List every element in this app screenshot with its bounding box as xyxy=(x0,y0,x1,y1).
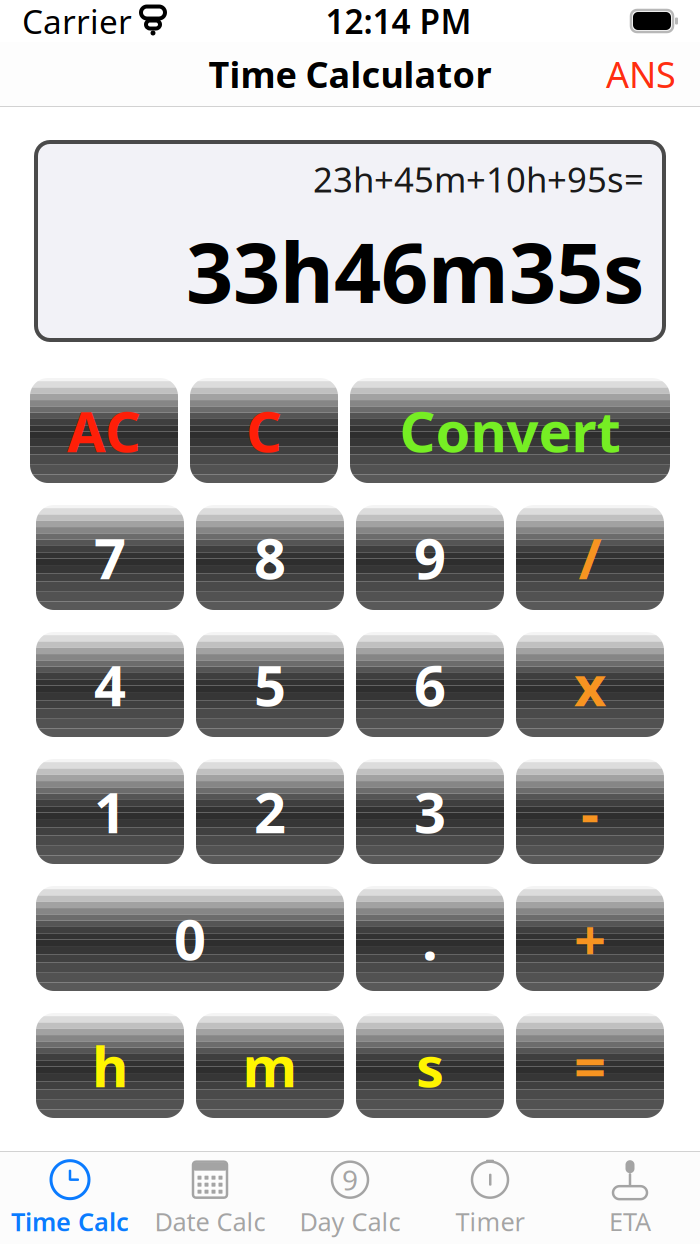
button[interactable]: m xyxy=(196,1013,344,1118)
staticText: 5 xyxy=(254,647,286,722)
staticText: Date Calc xyxy=(154,1205,265,1238)
button[interactable]: 1 xyxy=(36,759,184,864)
staticText: Time Calculator xyxy=(208,50,491,98)
button[interactable]: 4 xyxy=(36,632,184,737)
staticText: - xyxy=(581,774,599,849)
staticText: Convert xyxy=(399,393,620,468)
button[interactable]: x xyxy=(516,632,664,737)
staticText: Carrier xyxy=(22,0,132,43)
staticText: 9 xyxy=(414,520,446,595)
button[interactable]: 2 xyxy=(196,759,344,864)
staticText: 23h+45m+10h+95s= xyxy=(313,156,644,202)
staticText: 6 xyxy=(414,647,446,722)
staticText: 8 xyxy=(254,520,286,595)
button[interactable]: 7 xyxy=(36,505,184,610)
staticText: 1 xyxy=(94,774,126,849)
button[interactable]: s xyxy=(356,1013,504,1118)
staticText: / xyxy=(578,520,601,595)
staticText: 33h46m35s xyxy=(186,216,644,326)
button[interactable]: . xyxy=(356,886,504,991)
button[interactable]: Time Calc xyxy=(0,1156,140,1240)
button[interactable]: 5 xyxy=(196,632,344,737)
button[interactable]: 9 xyxy=(356,505,504,610)
button[interactable]: C xyxy=(190,378,338,483)
staticText: + xyxy=(574,901,606,976)
staticText: = xyxy=(574,1028,606,1103)
button[interactable]: - xyxy=(516,759,664,864)
staticText: Time Calc xyxy=(11,1205,129,1238)
staticText: s xyxy=(416,1028,444,1103)
staticText: . xyxy=(422,901,438,976)
staticText: h xyxy=(92,1028,128,1103)
staticText: 4 xyxy=(94,647,126,722)
button[interactable]: Convert xyxy=(350,378,670,483)
button[interactable]: ETA xyxy=(560,1156,700,1240)
button[interactable]: Date Calc xyxy=(140,1156,280,1240)
staticText: m xyxy=(242,1028,297,1103)
button[interactable]: Timer xyxy=(420,1156,560,1240)
button[interactable]: 0 xyxy=(36,886,344,991)
staticText: ETA xyxy=(609,1205,651,1238)
staticText: 3 xyxy=(414,774,446,849)
button[interactable]: / xyxy=(516,505,664,610)
staticText: 7 xyxy=(94,520,126,595)
staticText: x xyxy=(574,647,606,722)
staticText: ANS xyxy=(606,50,676,98)
button[interactable]: 8 xyxy=(196,505,344,610)
staticText: AC xyxy=(67,393,141,468)
staticText: Day Calc xyxy=(299,1205,400,1238)
button[interactable]: + xyxy=(516,886,664,991)
button[interactable]: 9 xyxy=(280,1156,420,1240)
button[interactable]: ANS xyxy=(592,40,690,108)
button[interactable]: 3 xyxy=(356,759,504,864)
button[interactable]: h xyxy=(36,1013,184,1118)
staticText: 0 xyxy=(174,901,206,976)
button[interactable]: AC xyxy=(30,378,178,483)
staticText: Timer xyxy=(455,1205,524,1238)
staticText: 2 xyxy=(254,774,286,849)
staticText: 12:14 PM xyxy=(325,0,471,43)
staticText: C xyxy=(246,393,282,468)
staticText: 9 xyxy=(342,1161,358,1198)
button[interactable]: 6 xyxy=(356,632,504,737)
button[interactable]: = xyxy=(516,1013,664,1118)
